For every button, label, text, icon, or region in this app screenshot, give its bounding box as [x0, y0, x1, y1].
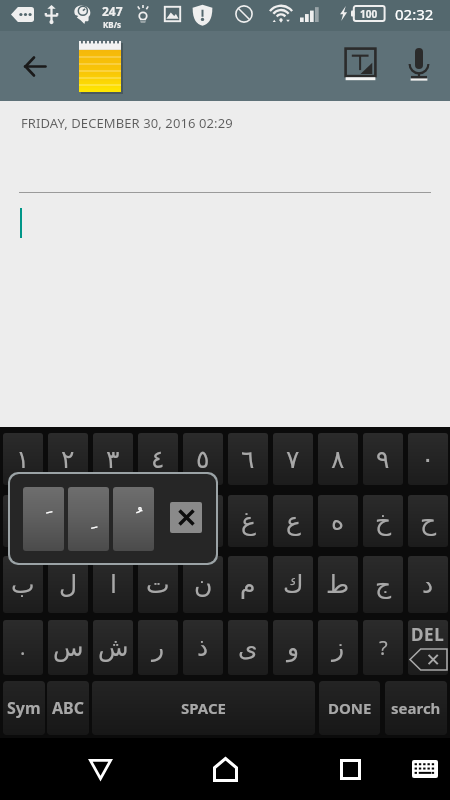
staticText: ع — [286, 507, 301, 536]
button[interactable]: ٩ — [363, 433, 403, 485]
button[interactable]: DONE — [319, 681, 380, 735]
button[interactable]: Back — [70, 745, 130, 793]
button[interactable]: Close — [170, 502, 202, 533]
staticText: SPACE — [181, 698, 226, 718]
button[interactable]: Voice input — [396, 38, 442, 90]
button[interactable]: ِ — [68, 487, 109, 551]
staticText: ل — [59, 570, 78, 599]
button[interactable]: Sym — [3, 681, 45, 735]
button[interactable]: ث — [93, 495, 133, 547]
staticText: ص — [53, 507, 84, 536]
button[interactable]: م — [228, 556, 268, 613]
button[interactable]: ا — [93, 556, 133, 613]
staticText: خ — [375, 507, 392, 536]
button[interactable]: ه — [318, 495, 358, 547]
staticText: د — [422, 570, 434, 599]
button[interactable]: ذ — [183, 620, 223, 675]
button[interactable]: ع — [273, 495, 313, 547]
staticText: ب — [11, 570, 35, 599]
button[interactable]: غ — [228, 495, 268, 547]
button[interactable]: ك — [273, 556, 313, 613]
button[interactable]: ق — [138, 495, 178, 547]
button[interactable]: ٥ — [183, 433, 223, 485]
staticText: ٤ — [151, 445, 165, 474]
staticText: ٣ — [106, 445, 120, 474]
button[interactable]: Home — [195, 745, 255, 793]
staticText: ك — [283, 570, 304, 599]
button[interactable]: ٧ — [273, 433, 313, 485]
button[interactable]: Text formatting — [337, 38, 383, 90]
button[interactable]: ٤ — [138, 433, 178, 485]
staticText: FRIDAY, DECEMBER 30, 2016 02:29 — [21, 114, 233, 132]
button[interactable]: Recent apps — [320, 745, 380, 793]
button[interactable]: search — [385, 681, 447, 735]
button[interactable]: ب — [3, 556, 43, 613]
button[interactable]: ط — [318, 556, 358, 613]
button[interactable]: ح — [408, 495, 448, 547]
staticText: ن — [194, 570, 213, 599]
button[interactable]: ض — [3, 495, 43, 547]
button[interactable]: و — [273, 620, 313, 675]
button[interactable]: ٨ — [318, 433, 358, 485]
staticText: 02:32 — [395, 4, 434, 24]
staticText: DEL — [411, 623, 445, 646]
staticText: ه — [331, 507, 345, 536]
button[interactable]: ٣ — [93, 433, 133, 485]
button[interactable]: ? — [363, 620, 403, 675]
staticText: ف — [190, 507, 216, 536]
button[interactable]: ٦ — [228, 433, 268, 485]
staticText: ٢ — [61, 445, 75, 474]
button[interactable]: ج — [363, 556, 403, 613]
button[interactable]: ص — [48, 495, 88, 547]
button[interactable]: ل — [48, 556, 88, 613]
staticText: ح — [420, 507, 437, 536]
staticText: ٧ — [286, 445, 300, 474]
staticText: ى — [238, 633, 258, 662]
button[interactable]: Switch keyboard — [400, 745, 450, 793]
button[interactable]: س — [48, 620, 88, 675]
button[interactable]: ت — [138, 556, 178, 613]
staticText: ت — [146, 570, 170, 599]
button[interactable]: ُ — [113, 487, 154, 551]
staticText: ض — [8, 507, 39, 536]
staticText: ش — [98, 633, 129, 662]
staticText: ٥ — [196, 445, 210, 474]
button[interactable]: ٢ — [48, 433, 88, 485]
staticText: ج — [375, 570, 392, 599]
button[interactable]: DEL — [408, 620, 448, 675]
button[interactable]: د — [408, 556, 448, 613]
button[interactable]: ن — [183, 556, 223, 613]
staticText: م — [240, 570, 256, 599]
staticText: . — [20, 634, 26, 661]
staticText: و — [287, 633, 300, 662]
staticText: 247 — [102, 3, 123, 19]
button[interactable]: َ — [23, 487, 64, 551]
staticText: س — [53, 633, 84, 662]
button[interactable]: ش — [93, 620, 133, 675]
button[interactable]: ف — [183, 495, 223, 547]
button[interactable]: ى — [228, 620, 268, 675]
staticText: ٦ — [241, 445, 255, 474]
button[interactable]: ٠ — [408, 433, 448, 485]
staticText: ٩ — [376, 445, 390, 474]
button[interactable]: خ — [363, 495, 403, 547]
staticText: ر — [152, 633, 165, 662]
staticText: 100 — [360, 7, 378, 21]
button[interactable]: Back — [10, 43, 60, 89]
staticText: ز — [332, 633, 345, 662]
staticText: ذ — [197, 633, 209, 662]
button[interactable]: ز — [318, 620, 358, 675]
button[interactable]: ر — [138, 620, 178, 675]
staticText: DONE — [328, 698, 372, 718]
button[interactable]: SPACE — [92, 681, 315, 735]
staticText: search — [391, 698, 441, 718]
staticText: ا — [110, 570, 117, 599]
button[interactable]: . — [3, 620, 43, 675]
staticText: ط — [326, 570, 350, 599]
staticText: ABC — [52, 697, 84, 719]
staticText: غ — [241, 507, 256, 536]
button[interactable]: ١ — [3, 433, 43, 485]
staticText: ١ — [16, 445, 30, 474]
button[interactable]: ABC — [47, 681, 89, 735]
staticText: ٨ — [331, 445, 345, 474]
